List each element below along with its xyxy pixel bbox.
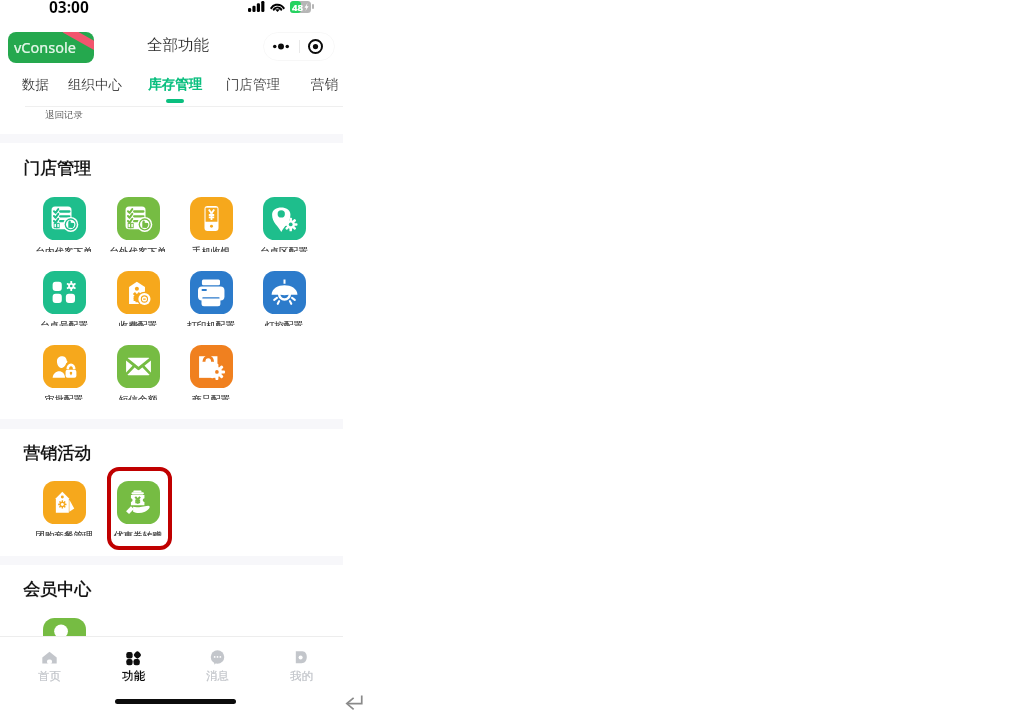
staticText: 手机收银 [167, 246, 255, 252]
staticText: 营销活动 [23, 443, 91, 464]
staticText: 打印机配置 [167, 320, 255, 326]
button[interactable]: 首页 [15, 645, 83, 687]
staticText: 打印机配置 [167, 320, 255, 326]
staticText: 灯控配置 [240, 320, 328, 326]
button[interactable]: 数据 [18, 71, 52, 97]
staticText: 我的 [290, 669, 313, 683]
button[interactable]: 台外代客下单 [94, 191, 182, 252]
staticText: 台桌区配置 [240, 246, 328, 252]
button[interactable]: Close mini program [297, 32, 333, 61]
staticText: 消息 [206, 669, 229, 683]
button[interactable]: 营销 [298, 71, 350, 97]
button[interactable] [43, 618, 86, 661]
staticText: 会员中心 [23, 579, 91, 600]
staticText: 手机收银 [167, 246, 255, 252]
button[interactable]: 库存管理 [142, 71, 208, 97]
staticText: 优惠券转赠 [94, 530, 182, 536]
button[interactable]: 灯控配置 [240, 265, 328, 326]
staticText: 台外代客下单 [94, 246, 182, 252]
staticText: 收费配置 [94, 320, 182, 326]
staticText: 短信余额 [94, 394, 182, 400]
staticText: 审批配置 [20, 394, 108, 400]
staticText: 台外代客下单 [94, 246, 182, 252]
button[interactable]: 打印机配置 [167, 265, 255, 326]
button[interactable]: 门店管理 [220, 71, 285, 97]
button[interactable]: 商品配置 [167, 339, 255, 400]
staticText: 数据 [22, 76, 49, 93]
staticText: 商品配置 [167, 394, 255, 400]
other: Return [345, 694, 363, 710]
staticText: 审批配置 [20, 394, 108, 400]
staticText: 台桌号配置 [20, 320, 108, 326]
button[interactable]: 短信余额 [94, 339, 182, 400]
staticText: 台桌区配置 [240, 246, 328, 252]
button[interactable]: 台桌号配置 [20, 265, 108, 326]
button[interactable]: More options [263, 32, 299, 61]
staticText: 审批配置 [20, 394, 108, 400]
staticText: 台外代客下单 [94, 246, 182, 252]
staticText: 功能 [122, 669, 145, 683]
staticText: 门店管理 [226, 76, 280, 93]
staticText: 退回记录 [45, 109, 83, 121]
staticText: 收费配置 [94, 320, 182, 326]
staticText: 台桌区配置 [240, 246, 328, 252]
button[interactable]: 审批配置 [20, 339, 108, 400]
staticText: 台内代客下单 [20, 246, 108, 252]
staticText: 打印机配置 [167, 320, 255, 326]
button[interactable]: vConsole [8, 32, 94, 63]
staticText: 首页 [38, 669, 61, 683]
staticText: vConsole [14, 37, 76, 57]
staticText: 商品配置 [167, 394, 255, 400]
staticText: 短信余额 [94, 394, 182, 400]
staticText: 台内代客下单 [20, 246, 108, 252]
staticText: 营销 [311, 76, 338, 93]
staticText: 灯控配置 [240, 320, 328, 326]
button[interactable]: 功能 [99, 645, 167, 687]
staticText: 短信余额 [94, 394, 182, 400]
staticText: 优惠券转赠 [94, 530, 182, 536]
staticText: 台桌号配置 [20, 320, 108, 326]
button[interactable]: 消息 [183, 645, 251, 687]
staticText: 全部功能 [147, 35, 209, 55]
staticText: 商品配置 [167, 394, 255, 400]
staticText: 台内代客下单 [20, 246, 108, 252]
staticText: 优惠券转赠 [94, 530, 182, 536]
button[interactable]: 手机收银 [167, 191, 255, 252]
staticText: 组织中心 [68, 76, 122, 93]
staticText: 灯控配置 [240, 320, 328, 326]
button[interactable]: 组织中心 [63, 71, 127, 97]
button[interactable]: 团购套餐管理 [20, 475, 108, 536]
staticText: 库存管理 [148, 76, 202, 93]
staticText: 03:00 [49, 0, 89, 17]
button[interactable]: 我的 [267, 645, 335, 687]
staticText: 门店管理 [23, 158, 91, 179]
button[interactable]: 台桌区配置 [240, 191, 328, 252]
staticText: 48 [292, 1, 303, 13]
staticText: 台桌号配置 [20, 320, 108, 326]
staticText: 团购套餐管理 [20, 530, 108, 536]
button[interactable]: 台内代客下单 [20, 191, 108, 252]
staticText: 团购套餐管理 [20, 530, 108, 536]
button[interactable]: 收费配置 [94, 265, 182, 326]
staticText: 收费配置 [94, 320, 182, 326]
staticText: 手机收银 [167, 246, 255, 252]
staticText: 团购套餐管理 [20, 530, 108, 536]
button[interactable]: 优惠券转赠 [94, 475, 182, 536]
